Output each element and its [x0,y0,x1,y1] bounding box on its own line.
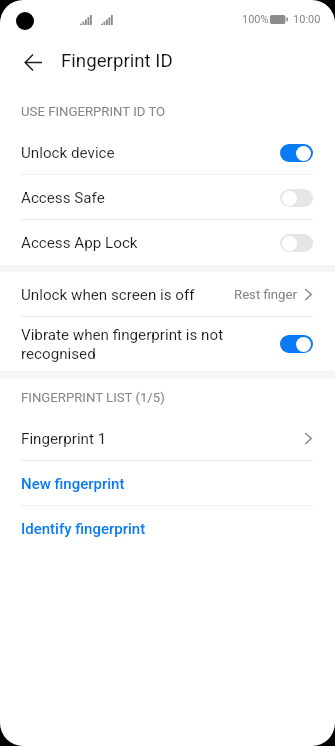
staticText: 10:00 [293,13,321,26]
staticText: Access Safe [21,189,280,207]
staticText: 100% [242,13,269,26]
staticText: New fingerprint [21,475,125,493]
button[interactable]: Unlock when screen is off [0,272,335,317]
staticText: Fingerprint ID [61,50,173,72]
button[interactable]: New fingerprint [0,461,335,506]
button[interactable]: Identify fingerprint [0,506,335,551]
button[interactable]: Vibrate when fingerprint is not recognis… [0,317,335,371]
staticText: USE FINGERPRINT ID TO [21,104,166,119]
staticText: FINGERPRINT LIST (1/5) [21,390,165,405]
button[interactable]: Back [14,43,52,81]
button[interactable]: Access Safe [0,175,335,220]
staticText: Fingerprint 1 [21,430,304,448]
button[interactable]: Access App Lock [0,220,335,265]
staticText: Identify fingerprint [21,520,146,538]
staticText: Vibrate when fingerprint is not recognis… [21,326,280,363]
staticText: Unlock when screen is off [21,286,234,304]
staticText: Rest finger [234,287,297,302]
staticText: Unlock device [21,144,280,162]
button[interactable]: Unlock device [0,130,335,175]
button[interactable]: Fingerprint 1 [0,416,335,461]
staticText: Access App Lock [21,234,280,252]
